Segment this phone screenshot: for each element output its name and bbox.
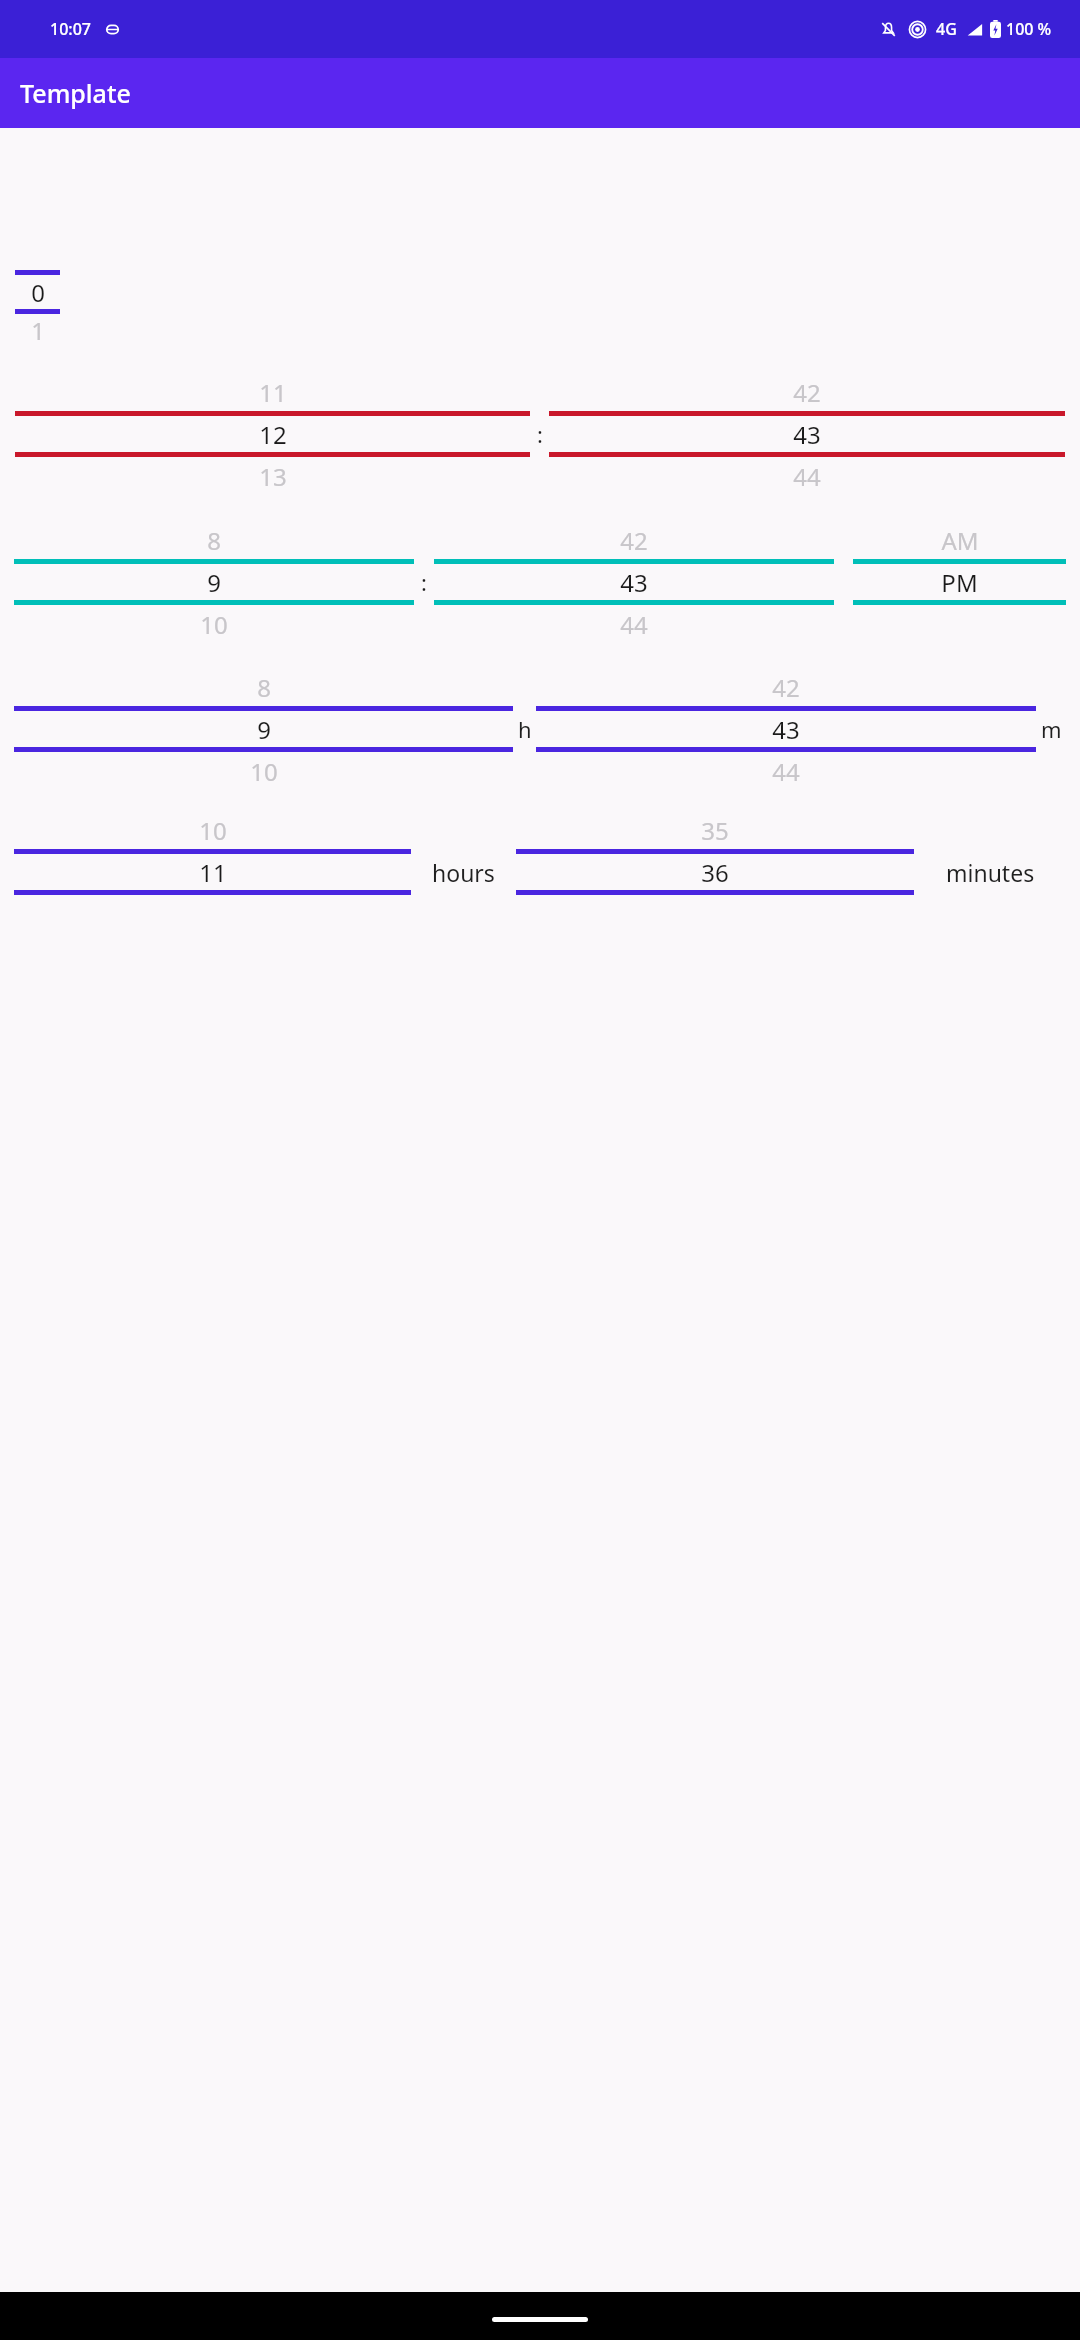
staticText: 9	[207, 566, 221, 599]
staticText: PM	[941, 566, 978, 599]
staticText: 11	[259, 376, 287, 409]
staticText: 43	[793, 418, 821, 451]
staticText: 0	[31, 276, 45, 309]
staticText: 8	[257, 671, 271, 704]
staticText: 44	[772, 755, 800, 788]
staticText: 1	[31, 314, 45, 344]
staticText: 35	[701, 814, 729, 847]
staticText: 42	[772, 671, 800, 704]
staticText: 13	[259, 460, 287, 493]
button[interactable]: 10	[14, 811, 411, 933]
staticText: 8	[207, 524, 221, 557]
staticText: 44	[620, 608, 648, 641]
staticText: 42	[793, 376, 821, 409]
button[interactable]: Home	[492, 2317, 588, 2322]
staticText: 10	[200, 608, 228, 641]
staticText: :	[537, 419, 543, 449]
button[interactable]: 42	[434, 521, 834, 643]
staticText: m	[1041, 714, 1062, 744]
staticText: 100 %	[1006, 18, 1052, 40]
staticText: 10	[250, 755, 278, 788]
staticText: hours	[432, 857, 495, 888]
button[interactable]: 42	[549, 373, 1065, 495]
staticText: 10:07	[50, 18, 91, 40]
button[interactable]: AM	[853, 521, 1066, 643]
button[interactable]: 8	[14, 521, 414, 643]
staticText: 44	[793, 460, 821, 493]
button[interactable]: 8	[14, 668, 513, 790]
staticText: 10	[199, 814, 227, 847]
staticText: minutes	[946, 857, 1035, 888]
staticText: 9	[257, 713, 271, 746]
button[interactable]: 42	[536, 668, 1036, 790]
staticText: :	[421, 567, 427, 597]
button[interactable]: 0	[15, 240, 60, 344]
staticText: 43	[620, 566, 648, 599]
staticText: 4G	[936, 18, 957, 40]
staticText: 43	[772, 713, 800, 746]
staticText: AM	[941, 524, 979, 557]
staticText: 11	[199, 856, 227, 889]
staticText: h	[518, 714, 532, 744]
staticText: 42	[620, 524, 648, 557]
button[interactable]: 11	[15, 373, 530, 495]
button[interactable]: 35	[516, 811, 914, 933]
staticText: 36	[701, 856, 729, 889]
staticText: Template	[20, 76, 131, 110]
staticText: 12	[259, 418, 287, 451]
